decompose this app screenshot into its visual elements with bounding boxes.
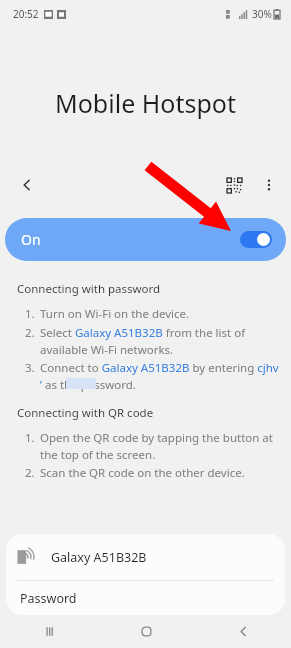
staticText: Password [20, 590, 77, 607]
button[interactable]: Galaxy A51B32B [6, 534, 285, 580]
staticText: Connect to Galaxy A51B32B by entering cj… [40, 360, 279, 392]
staticText: 1. [25, 306, 40, 322]
staticText: Galaxy A51B32B [51, 549, 147, 566]
button[interactable]: Home [126, 615, 166, 648]
staticText: 3. [25, 360, 40, 376]
staticText: Open the QR code by tapping the button a… [40, 430, 279, 462]
button[interactable]: Back [12, 170, 42, 200]
staticText: On [21, 230, 41, 249]
button[interactable]: Password [6, 581, 285, 615]
staticText: Turn on Wi-Fi on the device. [40, 306, 190, 322]
staticText: Connecting with password [17, 281, 161, 297]
staticText: 1. [25, 430, 40, 446]
staticText: 2. [25, 465, 40, 481]
staticText: Connecting with QR code [17, 405, 154, 421]
staticText: Mobile Hotspot [0, 86, 291, 120]
button[interactable]: More options [255, 171, 283, 199]
button[interactable]: Back [223, 615, 263, 648]
button[interactable]: On [5, 218, 286, 261]
staticText: Scan the QR code on the other device. [40, 465, 245, 481]
staticText: 2. [25, 325, 40, 341]
staticText: 30% [252, 7, 272, 21]
button[interactable]: Recents [29, 615, 69, 648]
staticText: Select Galaxy A51B32B from the list of a… [40, 325, 279, 357]
button[interactable]: Show QR code [219, 170, 249, 200]
staticText: 20:52 [13, 7, 39, 21]
